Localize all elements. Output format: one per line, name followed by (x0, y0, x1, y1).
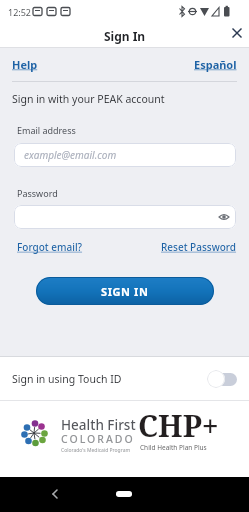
button[interactable] (207, 369, 237, 389)
staticText: Reset Password (161, 240, 237, 254)
staticText: CHP+ (138, 405, 219, 446)
staticText: Child Health Plan Plus (140, 443, 207, 452)
staticText: 12:52 (8, 6, 32, 18)
staticText: Password (17, 187, 58, 199)
button[interactable]: Forgot email? (17, 240, 83, 254)
staticText: COLORADO (61, 432, 135, 446)
staticText: Email address (17, 124, 76, 136)
button[interactable]: Reset Password (161, 240, 237, 254)
button[interactable]: Español (194, 57, 237, 72)
staticText: Colorado's Medicaid Program (61, 447, 131, 454)
button[interactable]: Help (12, 57, 38, 72)
button[interactable] (14, 205, 236, 229)
button[interactable]: SIGN IN (36, 277, 214, 305)
button[interactable] (116, 491, 132, 497)
button[interactable] (225, 24, 249, 48)
button[interactable]: example@email.com (14, 143, 236, 167)
staticText: Sign in using Touch ID (12, 372, 122, 386)
staticText: example@email.com (24, 148, 117, 162)
staticText: Sign in with your PEAK account (12, 92, 165, 106)
button[interactable] (43, 482, 67, 506)
staticText: Health First (61, 416, 136, 434)
staticText: SIGN IN (101, 284, 149, 299)
staticText: Sign In (104, 28, 146, 44)
staticText: Español (194, 57, 237, 72)
